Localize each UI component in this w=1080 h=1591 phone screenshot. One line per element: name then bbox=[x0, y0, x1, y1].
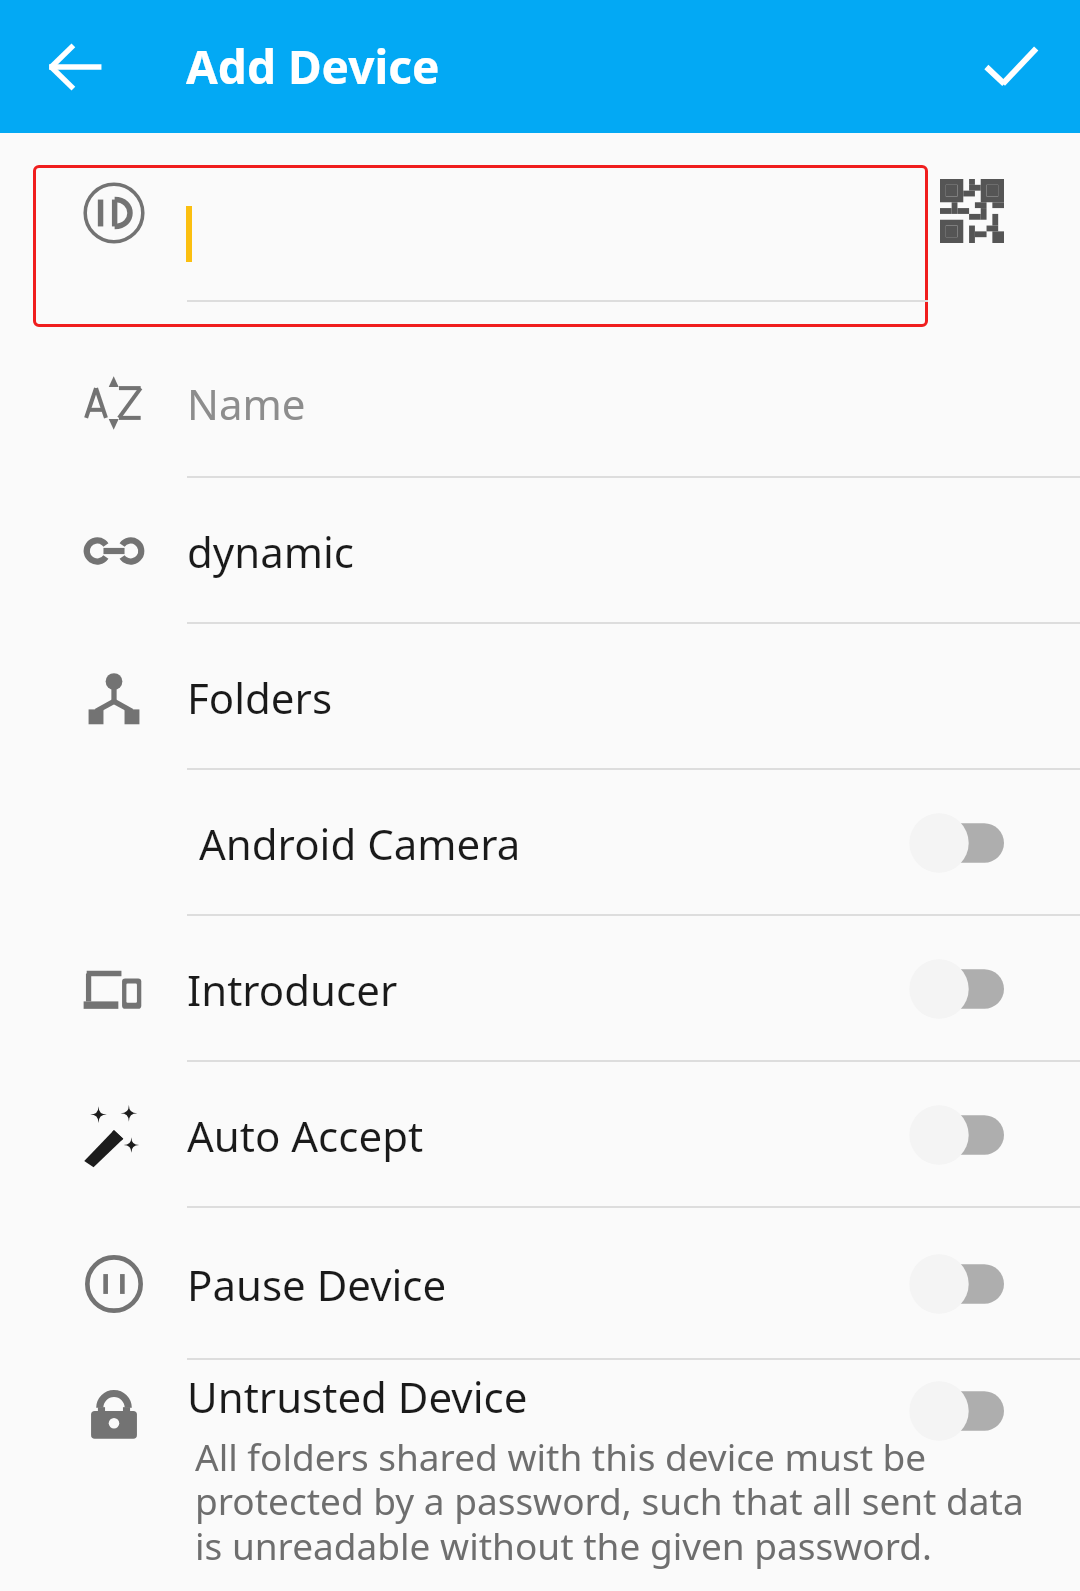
button[interactable]: Untrusted Device bbox=[0, 1360, 1080, 1591]
staticText: Untrusted Device bbox=[187, 1368, 528, 1425]
staticText: Pause Device bbox=[187, 1256, 447, 1313]
staticText: Folders bbox=[187, 669, 333, 726]
button[interactable]: Save bbox=[964, 20, 1058, 114]
button[interactable]: dynamic bbox=[0, 478, 1080, 624]
button[interactable]: Toggle bbox=[906, 1102, 1006, 1168]
button[interactable]: Toggle bbox=[906, 956, 1006, 1022]
staticText: dynamic bbox=[187, 523, 355, 580]
staticText: Android Camera bbox=[199, 815, 521, 872]
button[interactable]: Back bbox=[28, 20, 122, 114]
button[interactable]: Android Camera bbox=[0, 770, 1080, 916]
button[interactable]: Toggle bbox=[906, 810, 1006, 876]
button[interactable]: Name bbox=[0, 328, 1080, 478]
button[interactable]: Toggle bbox=[906, 1251, 1006, 1317]
button[interactable]: Toggle bbox=[906, 1378, 1006, 1444]
staticText: Introducer bbox=[187, 961, 398, 1018]
staticText: All folders shared with this device must… bbox=[195, 1431, 1046, 1571]
button[interactable]: Folders bbox=[0, 624, 1080, 770]
staticText: Auto Accept bbox=[187, 1107, 424, 1164]
staticText: Add Device bbox=[186, 35, 440, 98]
button[interactable]: Scan QR code bbox=[934, 173, 1010, 249]
button[interactable]: Pause Device bbox=[0, 1208, 1080, 1360]
button[interactable]: Introducer bbox=[0, 916, 1080, 1062]
button[interactable]: Auto Accept bbox=[0, 1062, 1080, 1208]
staticText: Name bbox=[187, 375, 306, 432]
